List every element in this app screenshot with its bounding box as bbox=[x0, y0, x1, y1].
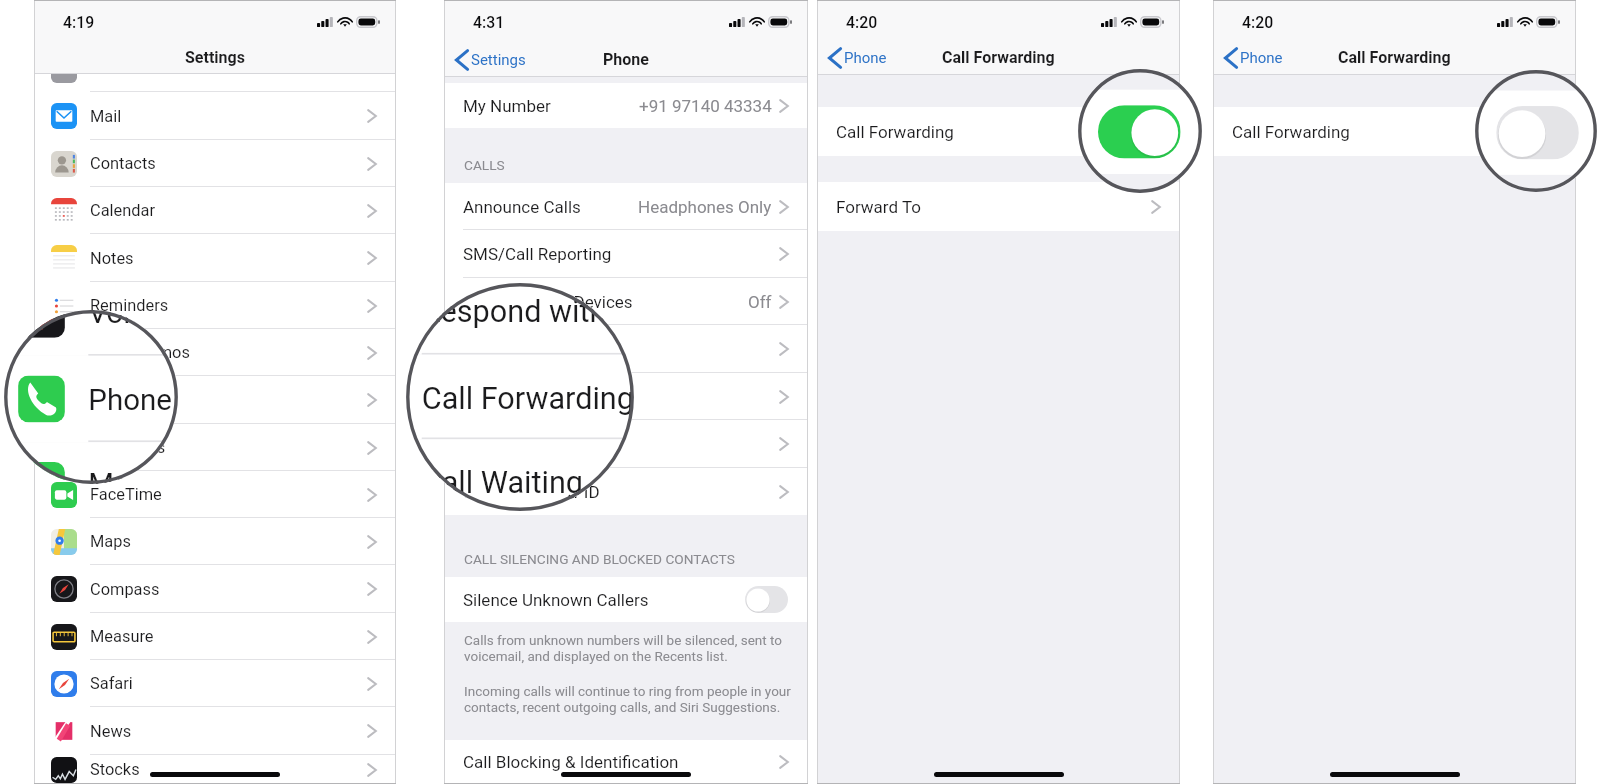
staticText: Maps bbox=[90, 532, 131, 551]
button[interactable]: Phone bbox=[4, 356, 178, 442]
staticText: Settings bbox=[185, 48, 245, 67]
button[interactable]: Messages bbox=[34, 424, 396, 471]
button[interactable]: Call Forwarding bbox=[1078, 90, 1202, 174]
button[interactable]: Reminders bbox=[34, 282, 396, 329]
button[interactable]: Switch, off bbox=[1508, 116, 1556, 147]
button[interactable]: Calls on Other Devices bbox=[444, 278, 808, 325]
staticText: Silence Unknown Callers bbox=[463, 590, 649, 610]
staticText: Calls on Other Devices bbox=[463, 292, 633, 312]
button[interactable]: Switch, off bbox=[1496, 106, 1579, 159]
button[interactable]: Silence Unknown Callers bbox=[444, 577, 808, 622]
staticText: Announce Calls bbox=[463, 197, 581, 217]
button[interactable]: Call Forwarding bbox=[444, 373, 808, 420]
staticText: Contacts bbox=[90, 154, 156, 173]
button[interactable]: Call Waiting bbox=[444, 420, 808, 468]
staticText: Headphones Only bbox=[638, 197, 772, 217]
staticText: Off bbox=[748, 292, 772, 312]
button[interactable]: Phone bbox=[34, 376, 396, 424]
staticText: Call Waiting bbox=[463, 434, 553, 454]
staticText: Calls from unknown numbers will be silen… bbox=[464, 632, 802, 664]
staticText: Call Blocking & Identification bbox=[463, 752, 679, 772]
staticText: Notes bbox=[90, 249, 134, 268]
button[interactable]: Call Forwarding bbox=[1475, 91, 1597, 175]
staticText: Call Forwarding bbox=[422, 380, 634, 416]
button[interactable]: Respond with Text bbox=[406, 283, 634, 355]
button[interactable]: My Number bbox=[444, 83, 808, 128]
button[interactable]: Call Waiting bbox=[406, 439, 634, 511]
staticText: Voice Memos bbox=[88, 310, 178, 331]
button[interactable]: Announce Calls bbox=[444, 183, 808, 230]
button[interactable]: Safari bbox=[34, 660, 396, 707]
staticText: 4:31 bbox=[473, 13, 505, 32]
button[interactable]: Forward To bbox=[817, 182, 1180, 231]
staticText: Show My Caller ID bbox=[463, 482, 600, 502]
button[interactable]: Stocks bbox=[34, 755, 396, 784]
button[interactable]: News bbox=[34, 707, 396, 755]
staticText: Compass bbox=[90, 580, 160, 599]
staticText: Phone bbox=[1240, 49, 1283, 67]
button[interactable]: Messages bbox=[4, 442, 178, 484]
staticText: Phone bbox=[844, 49, 887, 67]
button[interactable]: Switch, on bbox=[1098, 105, 1181, 158]
staticText: Call Forwarding bbox=[1232, 122, 1350, 142]
staticText: Call Waiting bbox=[422, 464, 584, 500]
staticText: Call Forwarding bbox=[1338, 48, 1451, 67]
staticText: Phone bbox=[90, 391, 137, 410]
button[interactable]: Call Forwarding bbox=[1213, 107, 1576, 156]
staticText: Respond with Text bbox=[463, 339, 602, 359]
button[interactable]: Voice Memos bbox=[34, 329, 396, 376]
button[interactable]: SMS/Call Reporting bbox=[444, 230, 808, 278]
staticText: Messages bbox=[90, 438, 166, 457]
staticText: Call Forwarding bbox=[942, 48, 1055, 67]
staticText: CALLS bbox=[464, 157, 505, 173]
staticText: 4:20 bbox=[846, 13, 878, 32]
staticText: CALL SILENCING AND BLOCKED CONTACTS bbox=[464, 551, 735, 567]
staticText: Forward To bbox=[836, 197, 921, 217]
staticText: Settings bbox=[471, 51, 526, 69]
button[interactable]: Call Forwarding bbox=[817, 107, 1180, 156]
button[interactable]: Call Blocking & Identification bbox=[444, 740, 808, 784]
staticText: News bbox=[90, 722, 132, 741]
button[interactable]: Respond with Text bbox=[444, 325, 808, 373]
button[interactable]: Switch, off bbox=[745, 586, 788, 613]
staticText: Phone bbox=[603, 50, 649, 69]
staticText: Call Forwarding bbox=[836, 122, 954, 142]
staticText: Voice Memos bbox=[90, 343, 190, 362]
staticText: Call Forwarding bbox=[463, 387, 581, 407]
button[interactable]: Measure bbox=[34, 613, 396, 660]
button[interactable]: Contacts bbox=[34, 140, 396, 187]
staticText: Reminders bbox=[90, 296, 169, 315]
button[interactable]: Switch, on bbox=[1112, 116, 1160, 147]
button[interactable]: Call Forwarding bbox=[406, 355, 634, 439]
button[interactable]: Phone bbox=[829, 48, 887, 68]
button[interactable]: Notes bbox=[34, 234, 396, 282]
button[interactable]: Show My Caller ID bbox=[444, 468, 808, 515]
button[interactable]: FaceTime bbox=[34, 471, 396, 518]
button[interactable]: Compass bbox=[34, 565, 396, 613]
button[interactable]: Maps bbox=[34, 518, 396, 565]
staticText: +91 97140 43334 bbox=[639, 96, 772, 116]
staticText: Respond with Text bbox=[422, 293, 634, 329]
staticText: Safari bbox=[90, 674, 133, 693]
button[interactable]: Voice Memos bbox=[4, 310, 178, 356]
staticText: SMS/Call Reporting bbox=[463, 244, 612, 264]
staticText: Mail bbox=[90, 107, 122, 126]
staticText: My Number bbox=[463, 96, 551, 116]
staticText: FaceTime bbox=[90, 485, 162, 504]
button[interactable]: Mail bbox=[34, 92, 396, 140]
staticText: Incoming calls will continue to ring fro… bbox=[464, 683, 802, 715]
staticText: Calendar bbox=[90, 201, 156, 220]
button[interactable]: Calendar bbox=[34, 187, 396, 234]
staticText: Measure bbox=[90, 627, 154, 646]
button[interactable]: Settings bbox=[456, 50, 526, 70]
staticText: Phone bbox=[88, 383, 173, 417]
staticText: 4:20 bbox=[1242, 13, 1274, 32]
staticText: Stocks bbox=[90, 760, 140, 779]
staticText: 4:19 bbox=[63, 13, 95, 32]
staticText: Messages bbox=[88, 467, 178, 484]
button[interactable]: Phone bbox=[1225, 48, 1283, 68]
